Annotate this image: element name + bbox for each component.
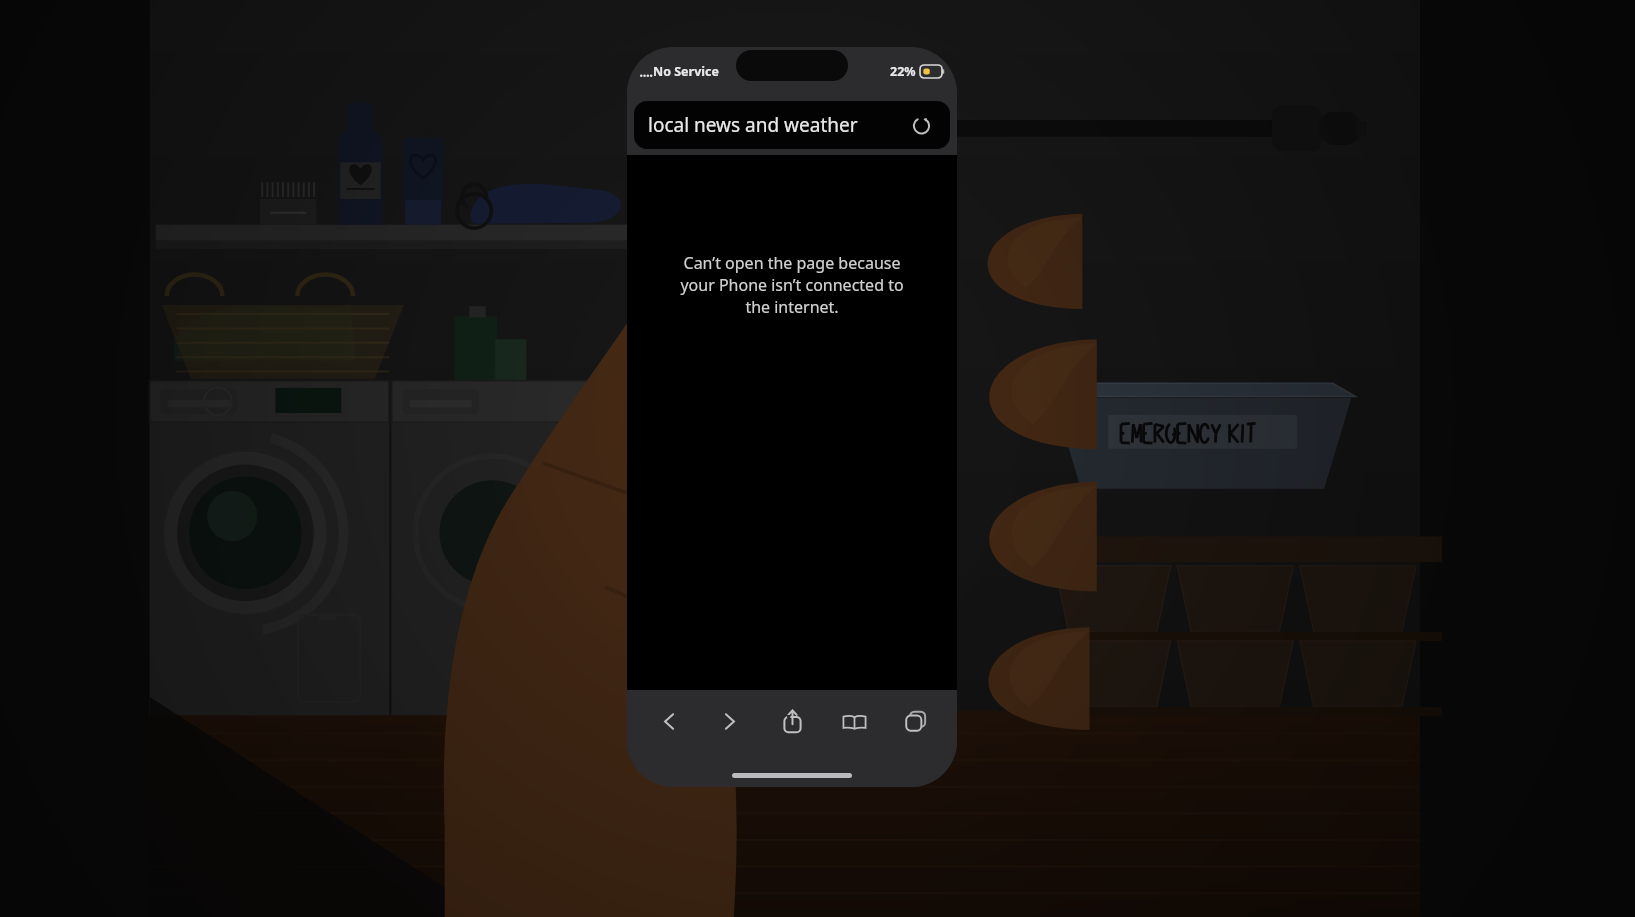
staticText: 22% — [890, 63, 916, 80]
staticText: No Service — [653, 63, 719, 80]
button[interactable]: Share — [767, 695, 817, 747]
staticText: local news and weather — [648, 112, 906, 138]
button[interactable]: Bookmarks — [829, 695, 879, 747]
button[interactable]: Forward — [705, 695, 755, 747]
button[interactable]: Reload page — [906, 110, 936, 140]
staticText: Can’t open the page because your Phone i… — [673, 252, 911, 318]
button[interactable]: Tabs — [891, 695, 941, 747]
button[interactable]: local news and weather — [634, 101, 950, 149]
button[interactable]: Back — [643, 695, 693, 747]
